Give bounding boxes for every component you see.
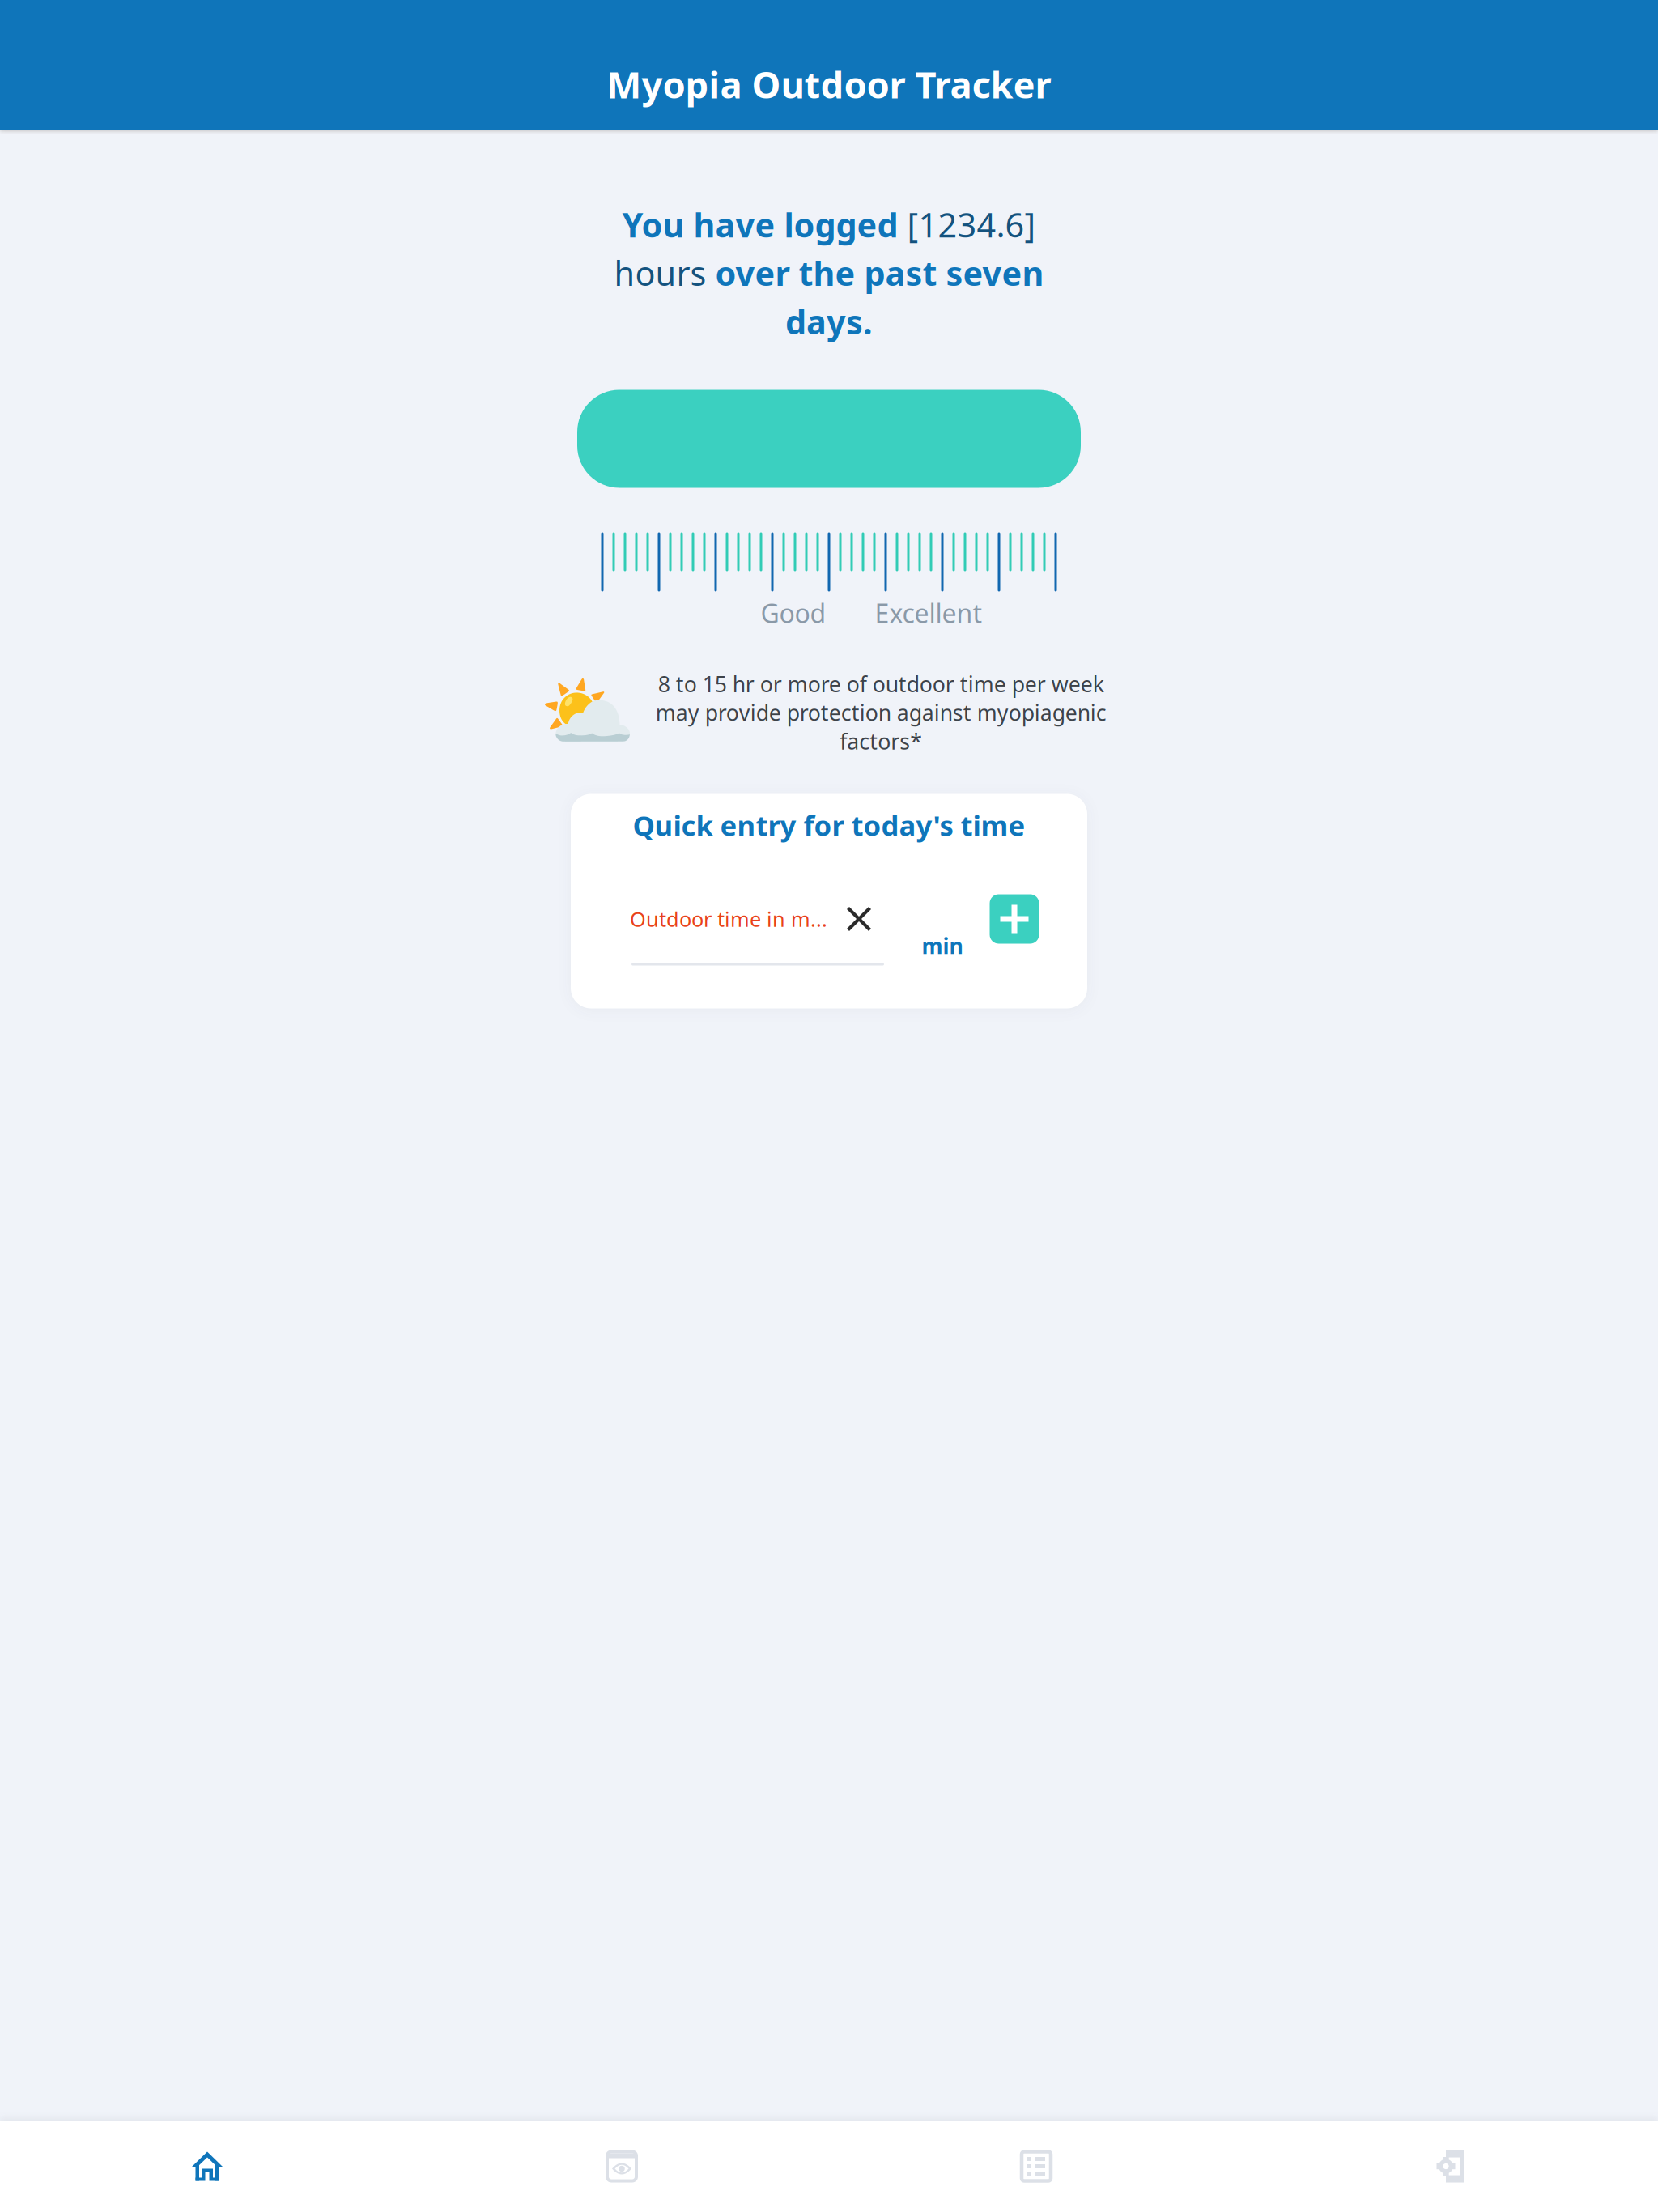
- staticText: Outdoor time in m...: [630, 905, 827, 933]
- staticText: hours: [614, 251, 715, 295]
- staticText: ⛅: [539, 668, 636, 757]
- staticText: [1234.6]: [907, 202, 1036, 247]
- staticText: days.: [785, 299, 873, 344]
- button[interactable]: Log: [829, 2121, 1243, 2212]
- staticText: Good: [761, 596, 826, 630]
- button[interactable]: Add time: [983, 887, 1046, 951]
- staticText: Myopia Outdoor Tracker: [607, 60, 1051, 109]
- staticText: min: [922, 931, 963, 960]
- staticText: You have logged: [622, 202, 907, 247]
- staticText: 8 to 15 hr or more of outdoor time per w…: [655, 670, 1106, 755]
- staticText: Quick entry for today's time: [633, 806, 1025, 844]
- button[interactable]: Home: [0, 2121, 414, 2212]
- button[interactable]: Vision: [414, 2121, 829, 2212]
- button[interactable]: Clear: [829, 889, 889, 949]
- staticText: over the past seven: [715, 251, 1044, 295]
- button[interactable]: Settings: [1243, 2121, 1658, 2212]
- staticText: Excellent: [875, 596, 982, 630]
